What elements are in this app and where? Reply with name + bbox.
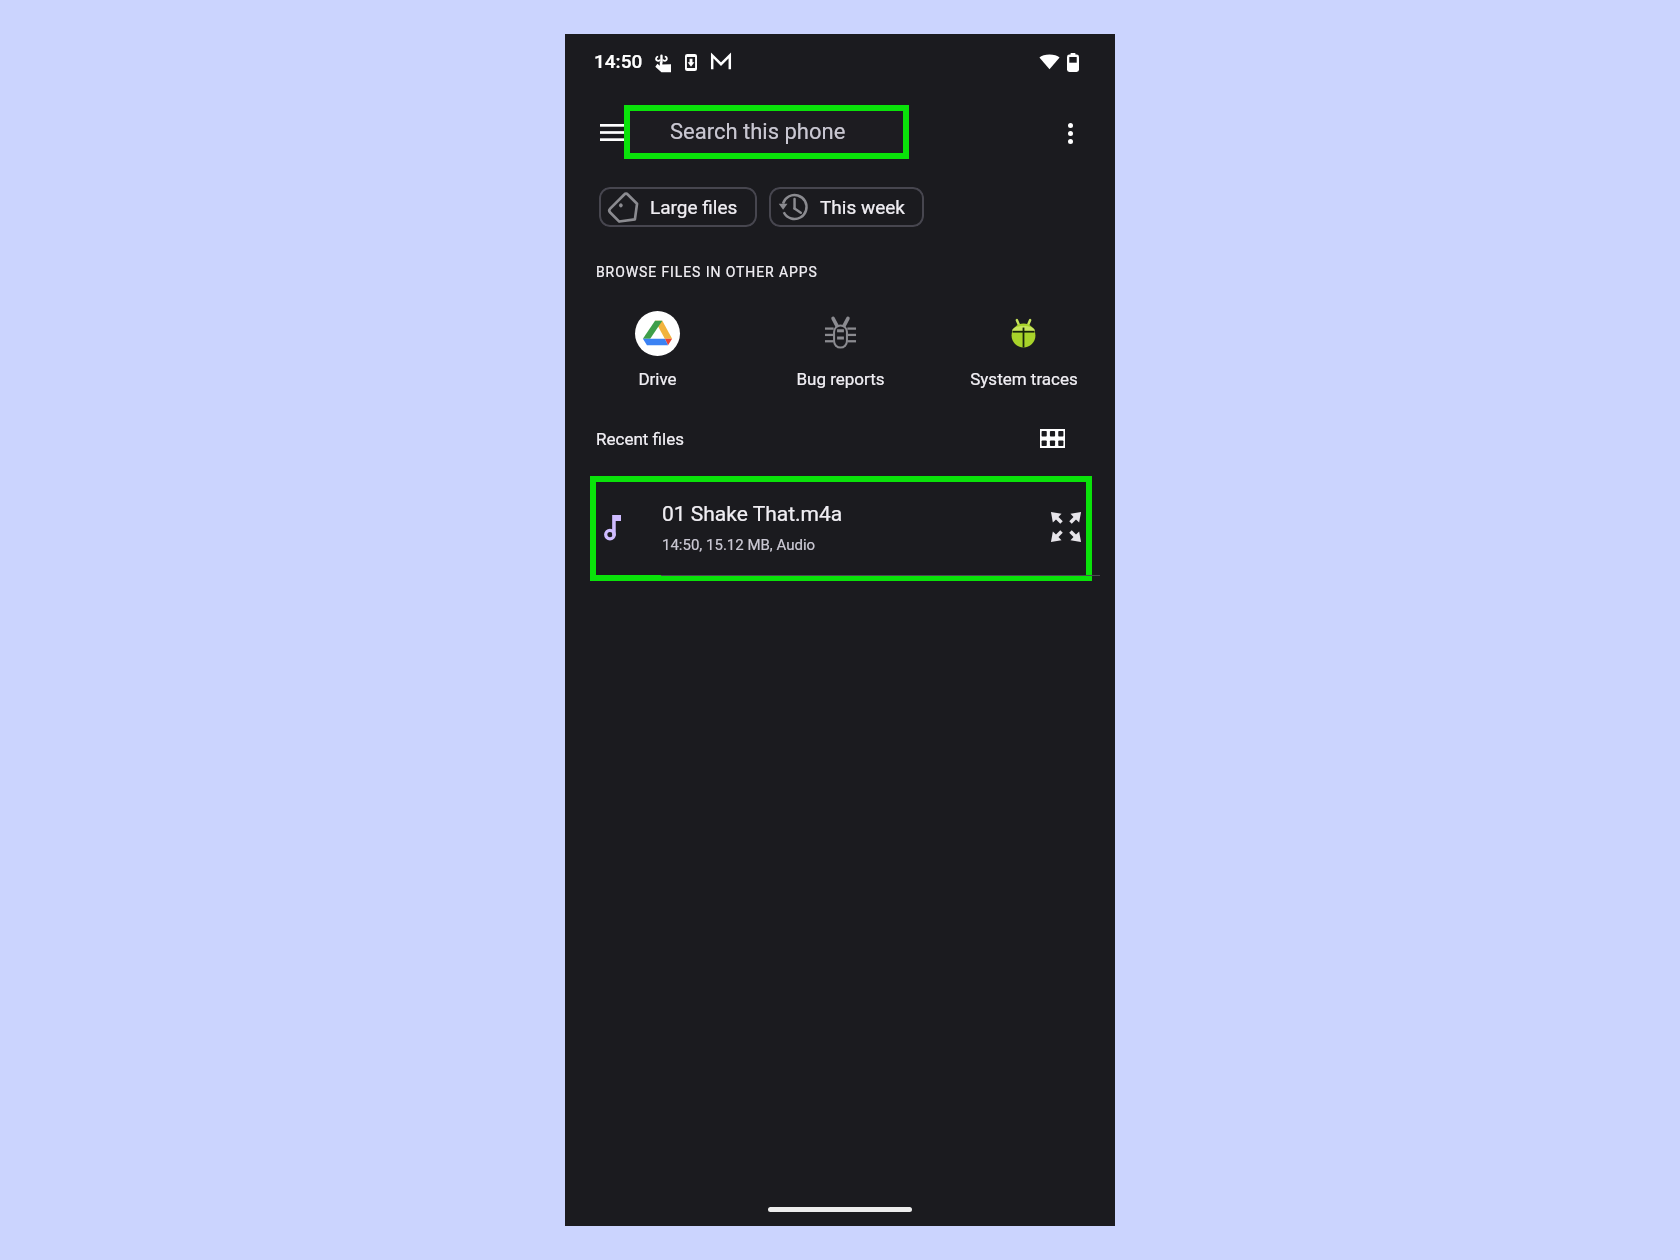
button[interactable]: 01 Shake That.m4a: [596, 482, 1086, 575]
button[interactable]: Switch to grid view: [1030, 416, 1074, 460]
staticText: Search this phone: [670, 119, 846, 145]
button[interactable]: Expand preview: [1042, 503, 1090, 551]
staticText: 14:50: [594, 50, 643, 72]
staticText: Bug reports: [796, 369, 885, 389]
staticText: Large files: [650, 196, 738, 218]
button[interactable]: More options: [1049, 112, 1091, 154]
button[interactable]: Large files: [599, 187, 757, 227]
staticText: BROWSE FILES IN OTHER APPS: [596, 264, 818, 280]
staticText: Drive: [638, 369, 677, 389]
button[interactable]: Open navigation menu: [580, 108, 628, 156]
button[interactable]: Drive: [565, 311, 749, 389]
staticText: 01 Shake That.m4a: [662, 502, 843, 527]
staticText: 14:50, 15.12 MB, Audio: [662, 536, 816, 554]
button[interactable]: Search this phone: [630, 111, 903, 153]
button[interactable]: System traces: [932, 311, 1115, 389]
button[interactable]: This week: [769, 187, 924, 227]
staticText: System traces: [970, 369, 1078, 389]
button[interactable]: Bug reports: [749, 311, 932, 389]
staticText: Recent files: [596, 429, 684, 449]
staticText: This week: [820, 196, 905, 218]
